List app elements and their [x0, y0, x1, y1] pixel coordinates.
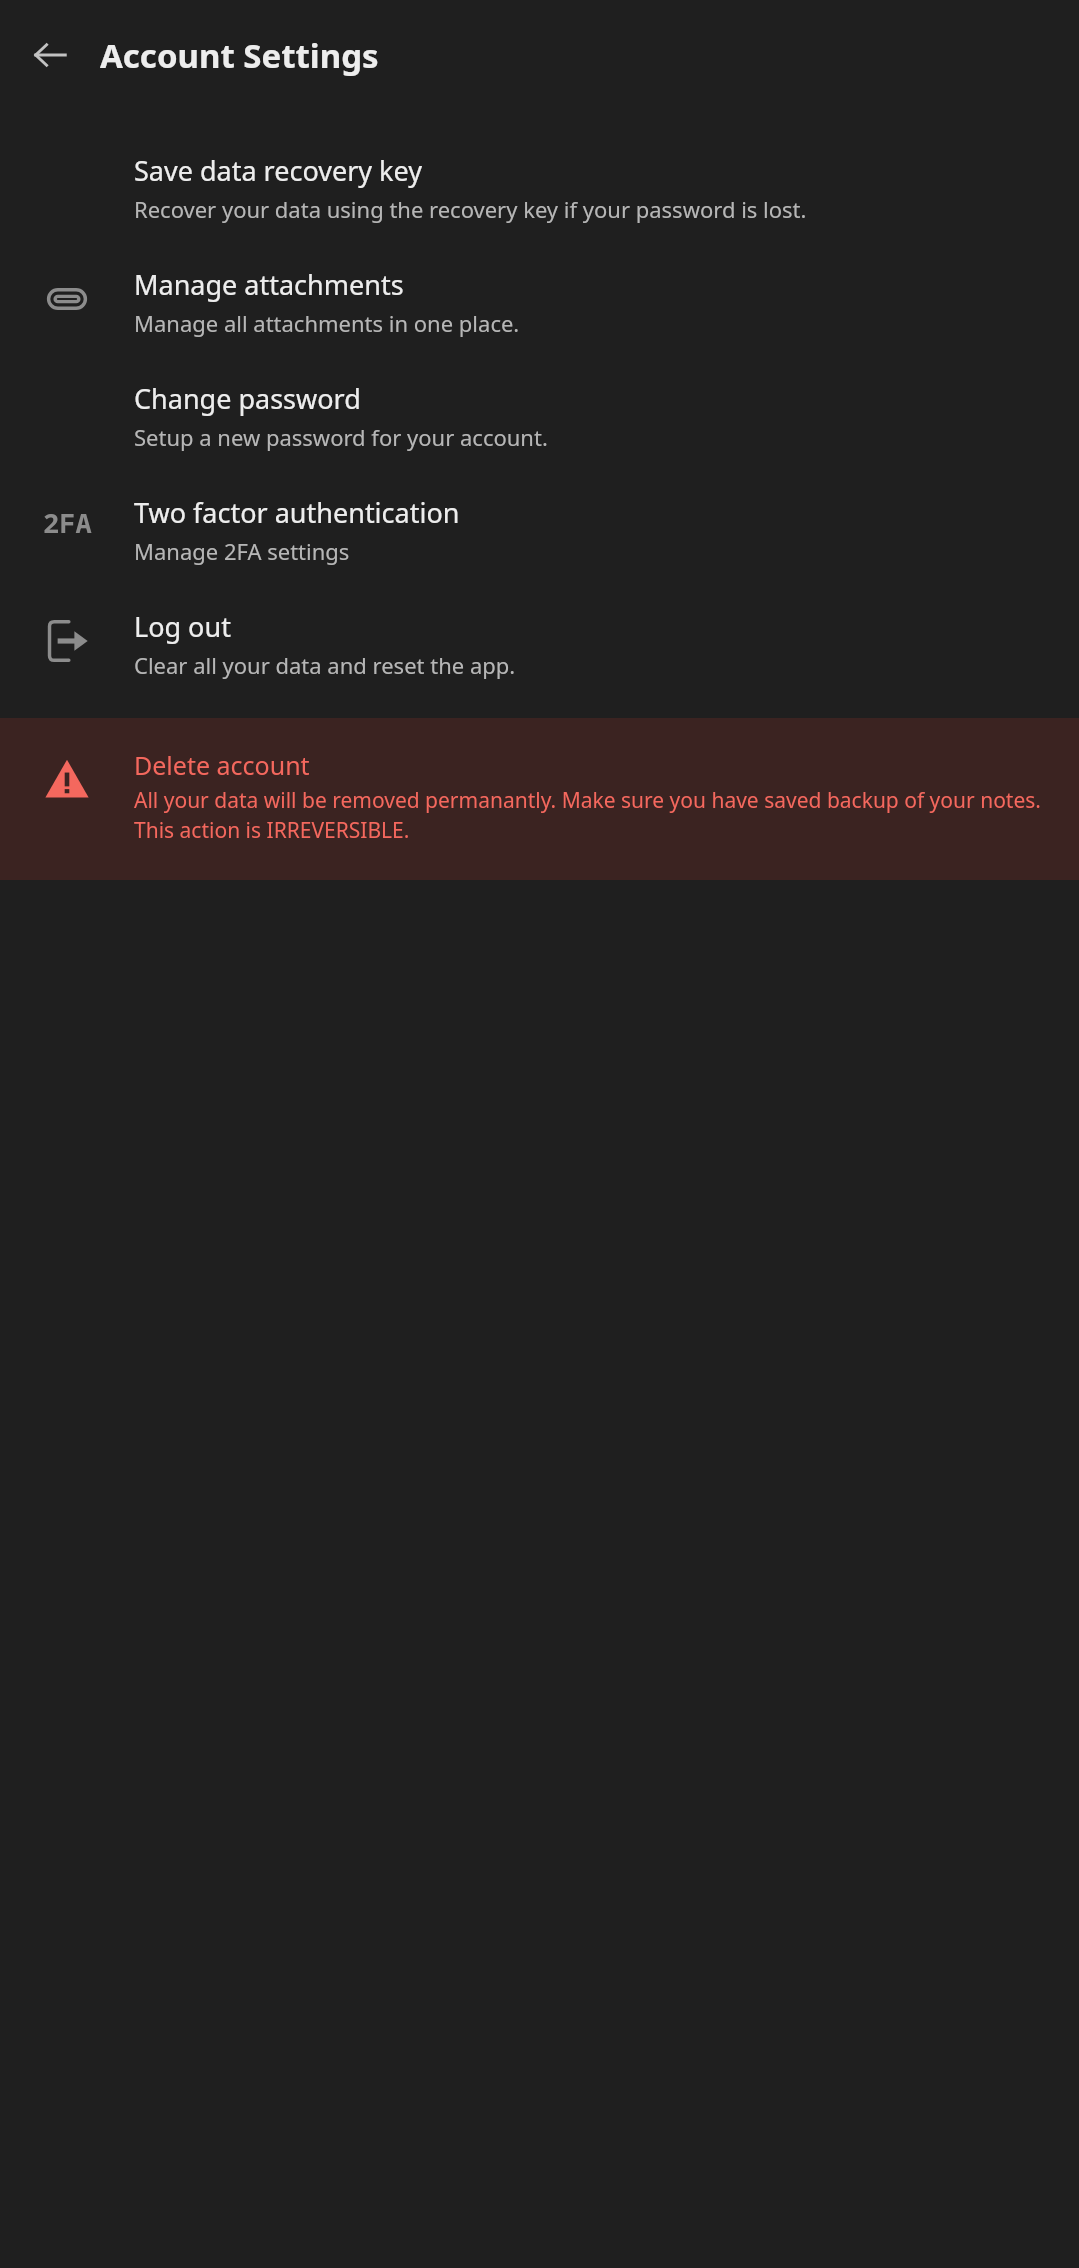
staticText: Setup a new password for your account. — [134, 422, 548, 452]
button[interactable]: Attachments — [0, 246, 1079, 360]
staticText: Clear all your data and reset the app. — [134, 650, 516, 680]
other: Attachments — [44, 276, 90, 322]
button[interactable]: Change password — [0, 360, 1079, 474]
other: Log out — [44, 618, 90, 664]
staticText: Log out — [134, 608, 231, 645]
staticText: Manage attachments — [134, 266, 404, 303]
staticText: Change password — [134, 380, 361, 417]
staticText: Recover your data using the recovery key… — [134, 194, 807, 224]
staticText: Account Settings — [100, 33, 379, 78]
staticText: Delete account — [134, 748, 310, 782]
staticText: Manage all attachments in one place. — [134, 308, 520, 338]
staticText: Save data recovery key — [134, 152, 422, 189]
other: Warning — [44, 756, 90, 802]
staticText: All your data will be removed permanantl… — [134, 786, 1059, 844]
button[interactable]: Save data recovery key — [0, 132, 1079, 246]
staticText: Two factor authentication — [134, 494, 460, 531]
button[interactable]: Log out — [0, 588, 1079, 702]
staticText: 2FA — [43, 504, 92, 541]
button[interactable]: Back — [14, 19, 86, 91]
staticText: Manage 2FA settings — [134, 536, 350, 566]
button[interactable]: Warning — [0, 718, 1079, 880]
button[interactable]: 2FA — [0, 474, 1079, 588]
